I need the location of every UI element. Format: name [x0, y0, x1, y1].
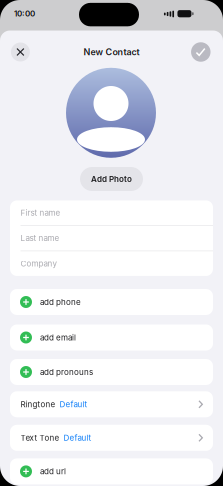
button[interactable]: Cancel: [11, 42, 30, 61]
staticText: Add Photo: [91, 174, 132, 184]
staticText: add url: [40, 467, 66, 476]
button[interactable]: Edit photo: [66, 68, 156, 158]
staticText: Default: [63, 433, 91, 442]
button[interactable]: Ringtone: [10, 391, 213, 417]
button[interactable]: add phone: [10, 289, 213, 315]
button[interactable]: Last name: [10, 226, 213, 250]
staticText: Company: [20, 259, 56, 268]
staticText: Default: [59, 400, 87, 409]
button[interactable]: Company: [10, 251, 213, 276]
staticText: New Contact: [83, 47, 139, 57]
button[interactable]: First name: [10, 200, 213, 225]
button[interactable]: add email: [10, 324, 213, 350]
staticText: add phone: [40, 297, 81, 307]
staticText: Ringtone: [20, 400, 55, 409]
staticText: Text Tone: [20, 433, 59, 442]
staticText: First name: [20, 208, 60, 217]
button[interactable]: Text Tone: [10, 425, 213, 451]
staticText: add email: [40, 333, 76, 342]
button[interactable]: add url: [10, 458, 213, 484]
button[interactable]: add pronouns: [10, 359, 213, 385]
button[interactable]: Done: [191, 42, 211, 62]
staticText: add pronouns: [40, 367, 93, 377]
button[interactable]: Add Photo: [80, 167, 143, 191]
staticText: Last name: [20, 233, 59, 243]
staticText: 10:00: [14, 9, 35, 18]
